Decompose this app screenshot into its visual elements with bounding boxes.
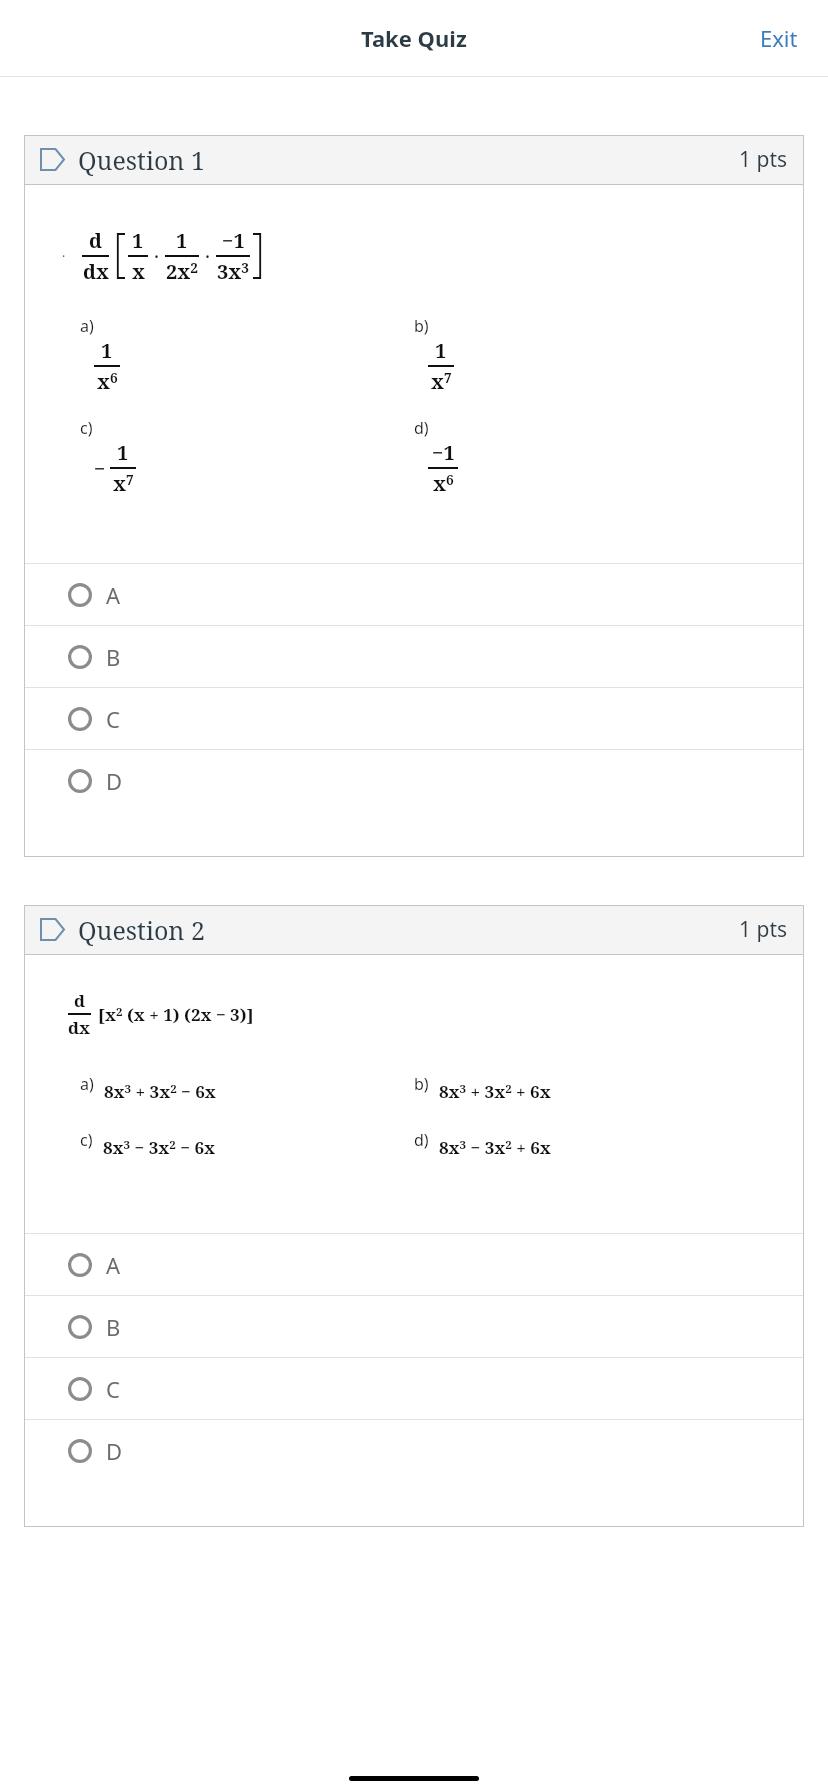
staticText: d) [414,417,429,439]
staticText: C [106,1374,120,1404]
staticText: 1 [435,337,447,364]
staticText: a) [80,1073,94,1095]
staticText: 3x3 [217,258,249,285]
button[interactable]: Flag question [40,135,788,184]
staticText: − [94,455,106,482]
staticText: C [106,704,120,734]
staticText: d) [414,1129,429,1151]
staticText: c) [80,417,93,439]
staticText: c) [80,1129,93,1151]
button[interactable]: A [24,564,804,625]
staticText: A [106,1250,121,1280]
staticText: 8x3 − 3x2 − 6x [103,1136,215,1159]
staticText: A [106,580,121,610]
staticText: · [154,243,159,270]
staticText: a) [80,315,94,337]
staticText: −1 [222,227,245,254]
button[interactable]: D [24,1420,804,1481]
staticText: −1 [432,439,455,466]
staticText: dx [68,1016,91,1039]
staticText: dx [83,258,109,285]
staticText: 1 [117,439,129,466]
staticText: 1 pts [739,145,788,174]
staticText: D [106,1436,123,1466]
staticText: 2x2 [166,258,198,285]
staticText: x [132,258,145,285]
button[interactable]: C [24,688,804,749]
staticText: D [106,766,123,796]
staticText: x6 [97,368,118,395]
staticText: b) [414,315,429,337]
staticText: Question 2 [78,913,205,947]
staticText: B [106,642,121,672]
staticText: d [89,227,102,254]
staticText: 1 [176,227,188,254]
staticText: 8x3 + 3x2 + 6x [439,1080,551,1103]
staticText: x7 [431,368,452,395]
button[interactable]: B [24,1296,804,1357]
staticText: Exit [760,23,798,53]
staticText: 1 pts [739,915,788,944]
staticText: Question 1 [78,143,205,177]
staticText: 1 [101,337,113,364]
staticText: Take Quiz [361,23,467,53]
other: Flag question [40,918,65,941]
staticText: [x2 (x + 1) (2x − 3)] [98,1003,254,1026]
staticText: 8x3 + 3x2 − 6x [104,1080,216,1103]
button[interactable]: B [24,626,804,687]
staticText: 8x3 − 3x2 + 6x [439,1136,551,1159]
staticText: · [62,247,66,265]
staticText: b) [414,1073,429,1095]
button[interactable]: A [24,1234,804,1295]
staticText: · [205,243,210,270]
staticText: d [74,989,86,1012]
staticText: 1 [132,227,144,254]
staticText: x6 [433,470,454,497]
other: Flag question [40,148,65,171]
button[interactable]: C [24,1358,804,1419]
button[interactable]: Flag question [40,905,788,954]
staticText: B [106,1312,121,1342]
button[interactable]: D [24,750,804,811]
staticText: x7 [113,470,134,497]
button[interactable]: Exit [750,15,808,61]
